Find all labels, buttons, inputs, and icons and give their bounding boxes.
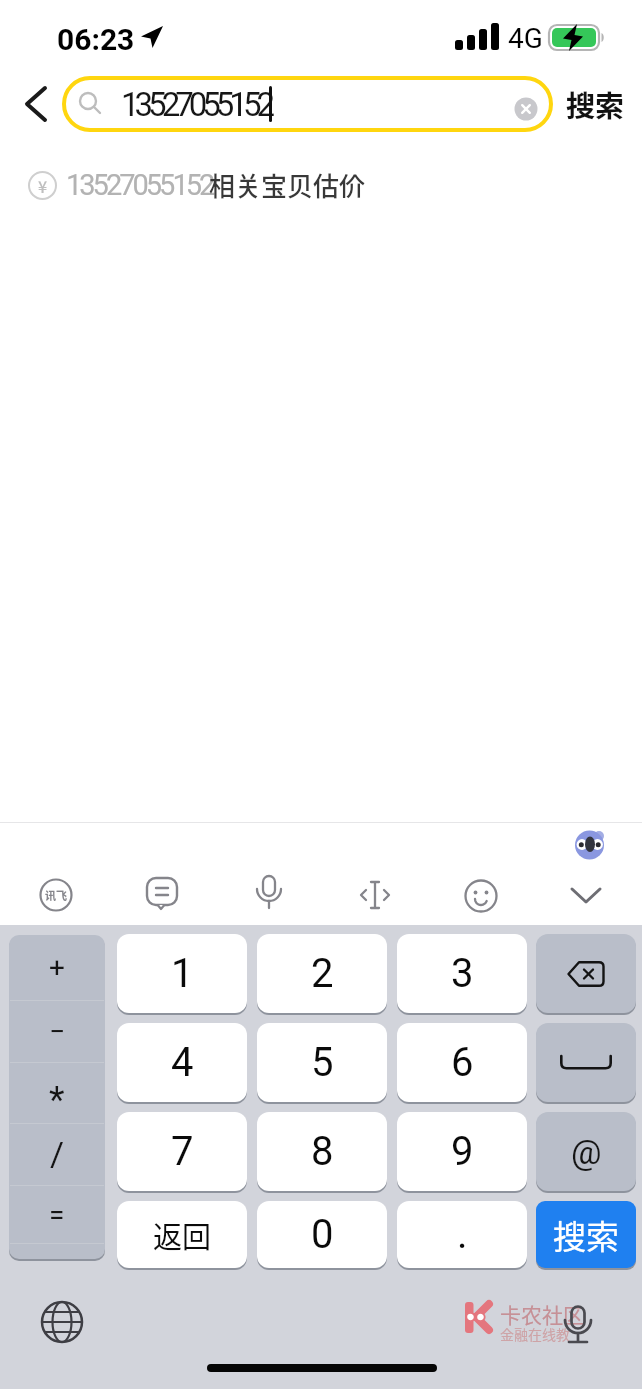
button[interactable] xyxy=(144,876,180,912)
button[interactable] xyxy=(252,874,286,914)
button[interactable]: 0 xyxy=(257,1201,387,1268)
staticText: 9 xyxy=(451,1128,474,1175)
button[interactable]: 讯飞 xyxy=(38,877,74,913)
staticText: 13527055152 xyxy=(66,168,213,202)
button[interactable]: @ xyxy=(536,1112,636,1191)
staticText: * xyxy=(49,1079,65,1121)
staticText: 金融在线教 xyxy=(500,1324,570,1342)
button[interactable]: 搜索 xyxy=(560,78,630,130)
staticText: 讯飞 xyxy=(45,887,67,903)
button[interactable] xyxy=(357,878,393,914)
button[interactable]: 8 xyxy=(257,1112,387,1191)
button[interactable] xyxy=(536,934,636,1013)
button[interactable]: 1 xyxy=(117,934,247,1013)
staticText: 1 xyxy=(171,950,194,997)
button[interactable]: 5 xyxy=(257,1023,387,1102)
staticText: 7 xyxy=(171,1128,194,1175)
staticText: 卡农社区 xyxy=(500,1299,584,1329)
staticText: − xyxy=(49,1015,66,1048)
button[interactable]: + xyxy=(9,935,105,1000)
button[interactable] xyxy=(0,158,642,212)
button[interactable]: − xyxy=(9,1000,105,1062)
button[interactable] xyxy=(62,76,553,132)
staticText: 06:23 xyxy=(57,22,135,57)
staticText: ¥ xyxy=(38,174,48,197)
staticText: 5 xyxy=(311,1039,334,1086)
staticText: . xyxy=(457,1211,468,1258)
staticText: 搜索 xyxy=(553,1211,619,1259)
button[interactable]: 3 xyxy=(397,934,527,1013)
button[interactable]: 返回 xyxy=(117,1201,247,1268)
button[interactable]: / xyxy=(9,1123,105,1185)
staticText: 3 xyxy=(451,950,474,997)
staticText: 4G xyxy=(508,22,543,52)
button[interactable]: * xyxy=(9,1069,105,1130)
staticText: 4 xyxy=(171,1039,194,1086)
button[interactable] xyxy=(36,1296,88,1348)
button[interactable]: 搜索 xyxy=(536,1201,636,1268)
button[interactable]: . xyxy=(397,1201,527,1268)
staticText: 搜索 xyxy=(566,83,625,125)
button[interactable]: 9 xyxy=(397,1112,527,1191)
staticText: 返回 xyxy=(153,1214,212,1256)
staticText: 6 xyxy=(451,1039,474,1086)
staticText: 2 xyxy=(311,950,334,997)
button[interactable] xyxy=(566,880,606,912)
button[interactable] xyxy=(536,1023,636,1102)
staticText: + xyxy=(49,951,65,984)
button[interactable]: 4 xyxy=(117,1023,247,1102)
staticText: / xyxy=(50,1134,65,1174)
button[interactable]: 2 xyxy=(257,934,387,1013)
button[interactable] xyxy=(14,78,58,130)
button[interactable] xyxy=(463,878,499,914)
button[interactable]: 6 xyxy=(397,1023,527,1102)
staticText: 8 xyxy=(311,1128,334,1175)
staticText: = xyxy=(49,1198,65,1231)
button[interactable] xyxy=(509,92,543,126)
staticText: 0 xyxy=(311,1211,334,1258)
staticText: @ xyxy=(571,1132,602,1172)
staticText: 相关宝贝估价 xyxy=(209,166,366,204)
button[interactable]: = xyxy=(9,1185,105,1243)
staticText: 13527055152 xyxy=(121,85,271,124)
button[interactable]: 7 xyxy=(117,1112,247,1191)
